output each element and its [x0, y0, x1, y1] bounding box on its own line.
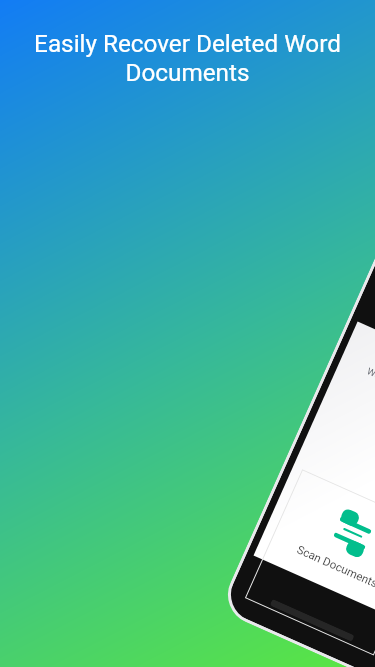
- staticText: Scan Documents: [271, 532, 375, 600]
- button[interactable]: Scan Documents: [246, 470, 375, 655]
- staticText: Easily Recover Deleted Word Documents: [20, 29, 355, 87]
- staticText: Word Document Recovery: [365, 365, 375, 420]
